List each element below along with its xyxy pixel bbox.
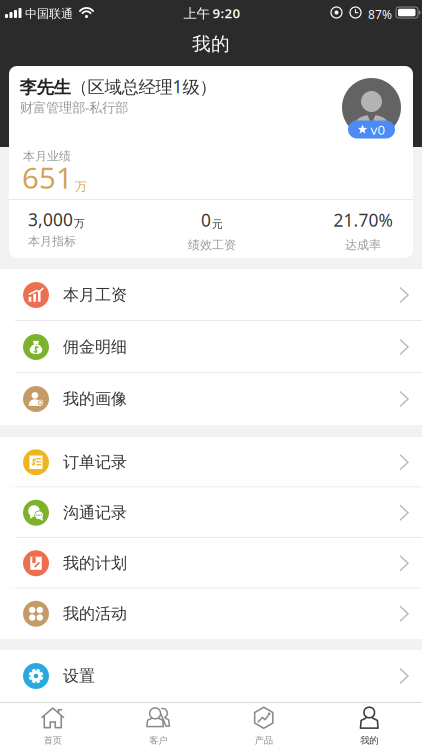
staticText: v0	[370, 121, 385, 138]
button[interactable]: 我的画像	[0, 373, 422, 425]
button[interactable]: 产品	[211, 703, 316, 750]
button[interactable]: 设置	[0, 650, 422, 702]
staticText: 设置	[63, 666, 95, 686]
staticText: 我的活动	[63, 604, 127, 624]
button[interactable]: 我的活动	[0, 588, 422, 639]
staticText: 中国联通	[25, 6, 73, 21]
button[interactable]: 我的	[316, 703, 422, 750]
staticText: 本月业绩	[23, 149, 71, 164]
staticText: 产品	[255, 735, 273, 746]
staticText: 沟通记录	[63, 503, 127, 523]
staticText: 万	[74, 217, 85, 230]
staticText: 本月指标	[28, 234, 76, 249]
staticText: 我的画像	[63, 389, 127, 409]
staticText: 万	[75, 179, 87, 194]
staticText: 佣金明细	[63, 337, 127, 357]
staticText: 李先生	[19, 77, 70, 98]
staticText: （区域总经理1级）	[70, 75, 216, 98]
button[interactable]: 客户	[105, 703, 211, 750]
button[interactable]: 我的计划	[0, 538, 422, 588]
staticText: 达成率	[345, 238, 381, 252]
button[interactable]: 本月工资	[0, 269, 422, 321]
staticText: 订单记录	[63, 452, 127, 472]
staticText: 3,000	[28, 208, 73, 231]
button[interactable]: 订单记录	[0, 437, 422, 487]
button[interactable]: 首页	[0, 703, 105, 750]
staticText: 651	[22, 158, 73, 197]
staticText: 本月工资	[63, 285, 127, 305]
staticText: 客户	[149, 735, 167, 746]
staticText: 我的	[192, 32, 230, 55]
staticText: 21.70%	[333, 209, 392, 232]
staticText: 首页	[44, 735, 62, 746]
staticText: 0	[201, 209, 211, 232]
staticText: 上午 9:20	[183, 4, 240, 22]
staticText: 87%	[368, 6, 392, 22]
staticText: 我的	[360, 735, 378, 746]
staticText: 财富管理部-私行部	[20, 98, 128, 116]
staticText: 我的计划	[63, 553, 127, 573]
button[interactable]: 沟通记录	[0, 487, 422, 538]
staticText: 元	[212, 217, 223, 231]
button[interactable]: 佣金明细	[0, 321, 422, 373]
staticText: 绩效工资	[188, 238, 236, 252]
